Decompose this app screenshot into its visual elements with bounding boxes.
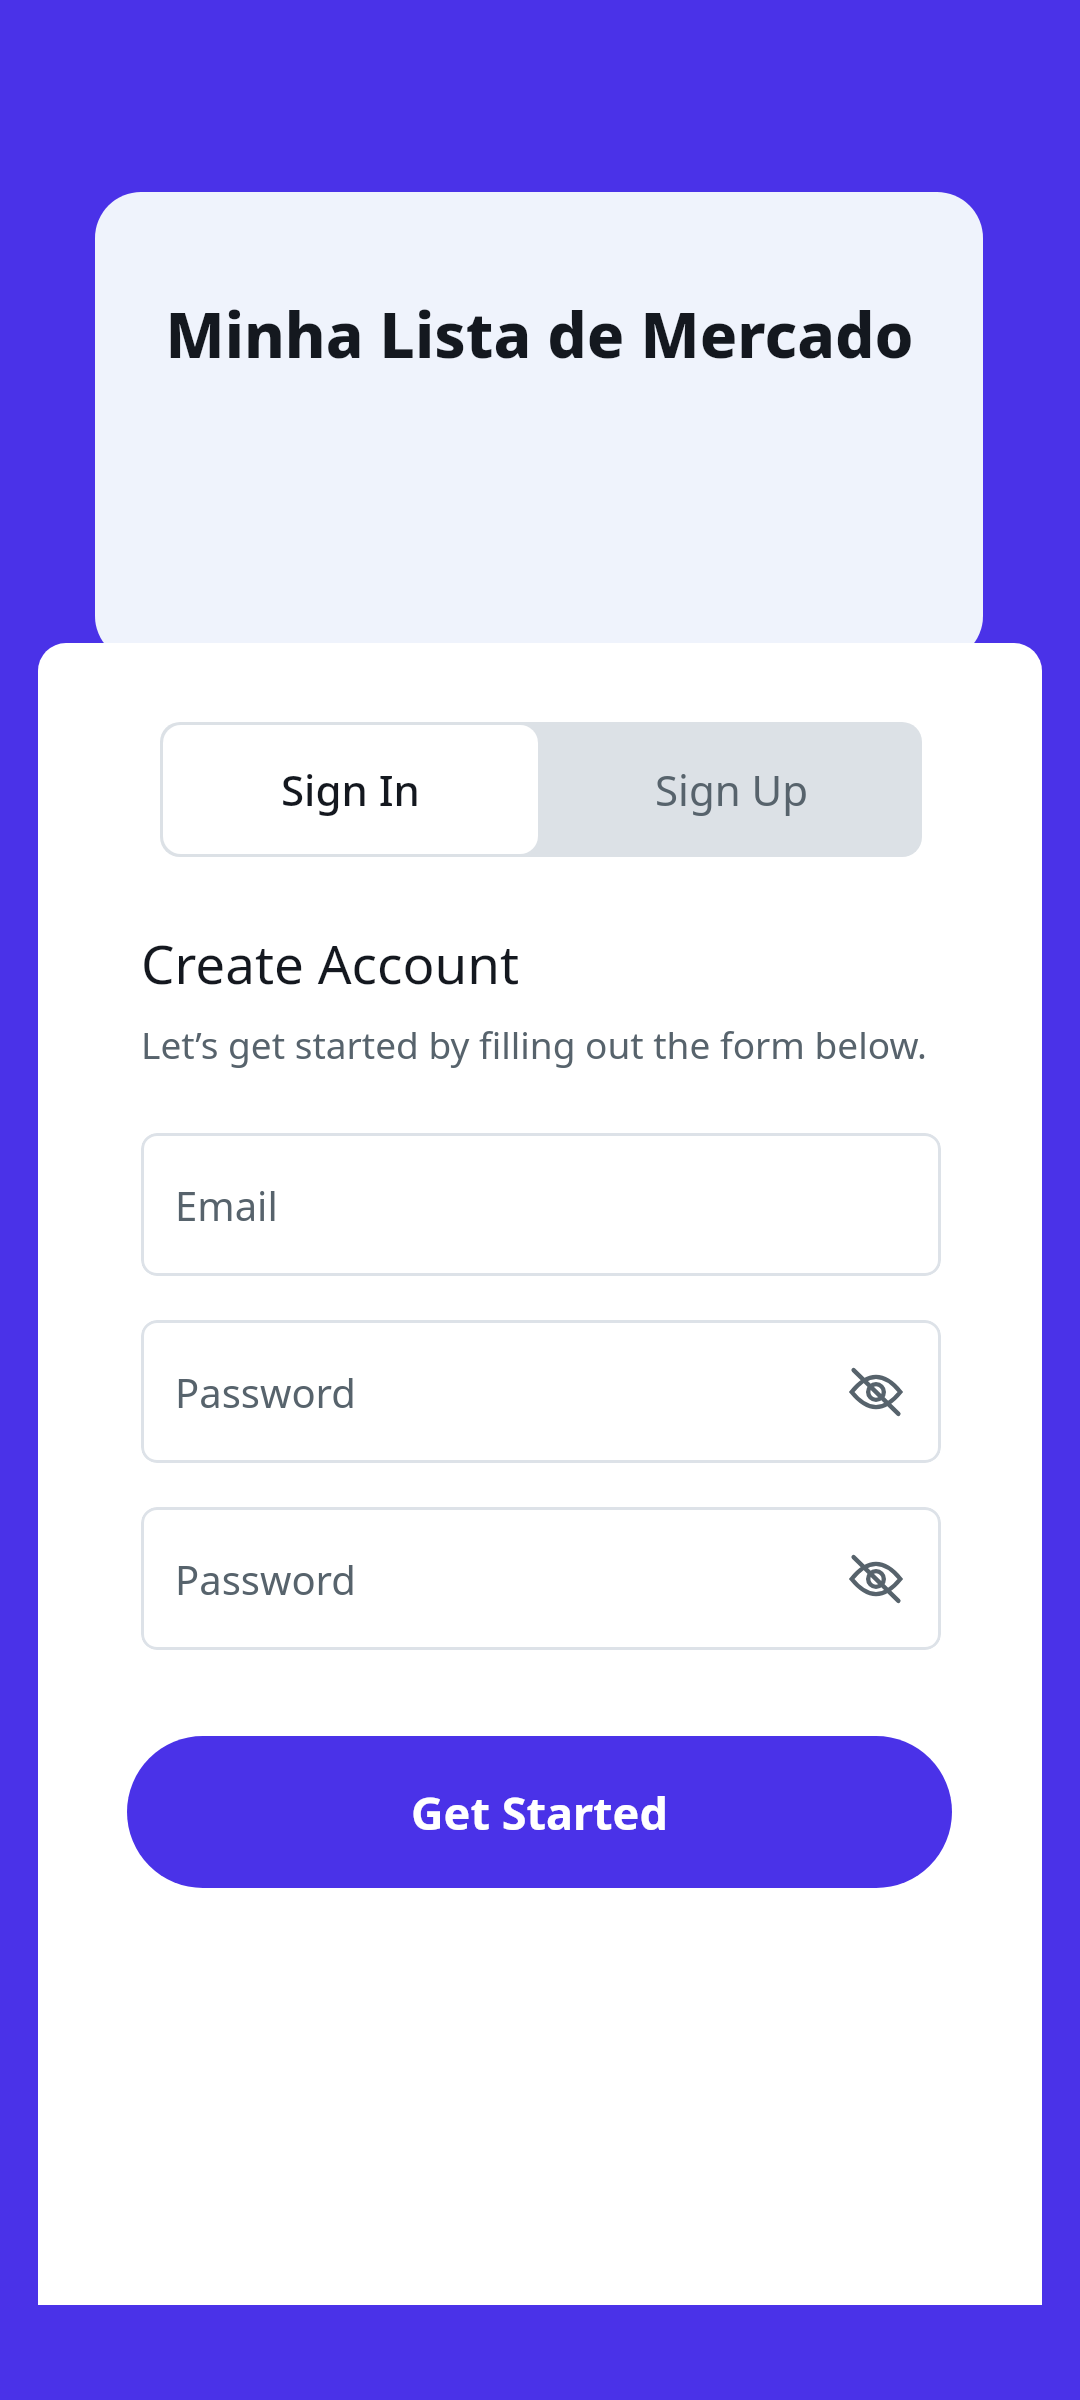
staticText: Sign Up xyxy=(655,761,809,818)
button[interactable]: Get Started xyxy=(127,1736,952,1888)
button[interactable]: Email xyxy=(141,1133,941,1276)
staticText: Let’s get started by filling out the for… xyxy=(141,1019,927,1069)
staticText: Password xyxy=(175,1552,845,1606)
staticText: Sign In xyxy=(281,761,420,818)
staticText: Create Account xyxy=(141,927,520,999)
other: Show password xyxy=(845,1361,907,1423)
button[interactable]: Password xyxy=(141,1320,941,1463)
other: Show password xyxy=(845,1548,907,1610)
button[interactable]: Password xyxy=(141,1507,941,1650)
button[interactable]: Sign Up xyxy=(541,722,922,857)
staticText: Email xyxy=(175,1178,907,1232)
staticText: Minha Lista de Mercado xyxy=(165,292,914,376)
staticText: Get Started xyxy=(411,1782,668,1843)
button[interactable]: Sign In xyxy=(163,725,538,854)
staticText: Password xyxy=(175,1365,845,1419)
